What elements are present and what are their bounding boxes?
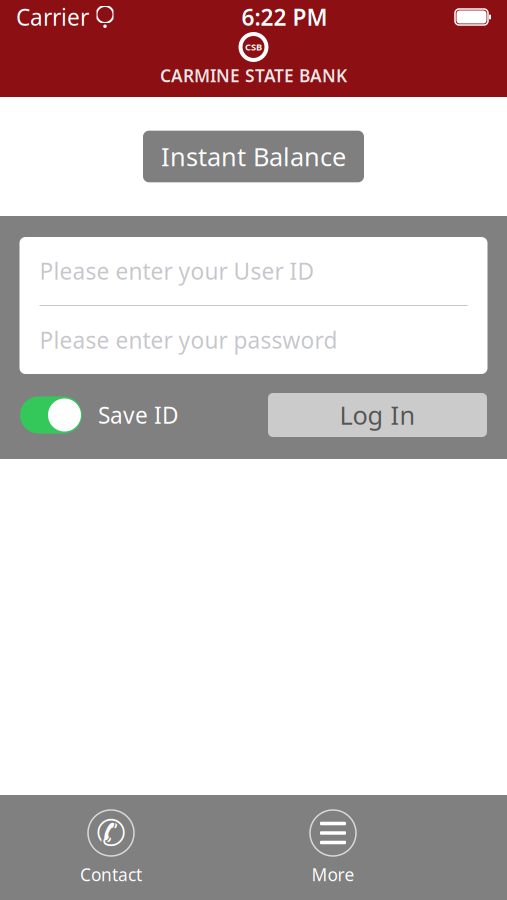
button[interactable]: Save ID [20, 396, 179, 433]
button[interactable]: More [285, 804, 381, 890]
staticText: CSB [245, 41, 262, 53]
staticText: More [311, 863, 354, 886]
staticText: Log In [339, 398, 415, 432]
staticText: ✆ [96, 813, 126, 853]
button[interactable]: Please enter your password [19, 306, 487, 374]
button[interactable]: Please enter your User ID [19, 237, 487, 305]
button[interactable]: Instant Balance [143, 131, 364, 182]
button[interactable]: Log In [268, 393, 487, 437]
staticText: Please enter your User ID [39, 256, 314, 286]
staticText: Instant Balance [161, 140, 346, 173]
staticText: Carrier [16, 2, 89, 32]
staticText: 6:22 PM [241, 2, 327, 32]
staticText: Please enter your password [39, 325, 337, 355]
staticText: Contact [80, 863, 142, 886]
staticText: CARMINE STATE BANK [160, 64, 347, 87]
staticText: Save ID [98, 400, 179, 430]
button[interactable]: Contact [63, 804, 159, 890]
